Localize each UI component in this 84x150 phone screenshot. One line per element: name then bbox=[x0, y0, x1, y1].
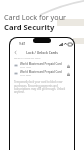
button[interactable]: Lock card bbox=[66, 72, 70, 76]
button[interactable]: Lock card bbox=[66, 64, 70, 68]
button[interactable]: Back bbox=[13, 50, 18, 55]
staticText: SELECT A CARD TO LOCK bbox=[14, 57, 41, 60]
button[interactable]: World Mastercard Prepaid Card bbox=[10, 61, 74, 70]
staticText: **** 1234 bbox=[20, 66, 31, 69]
staticText: Lock / Unlock Cards bbox=[10, 50, 74, 54]
staticText: **** 5678 bbox=[20, 74, 31, 77]
staticText: Card Lock for your bbox=[4, 12, 67, 22]
staticText: Card Security bbox=[4, 22, 55, 32]
staticText: World Mastercard Prepaid Card bbox=[20, 62, 62, 66]
staticText: 9:41 bbox=[19, 42, 26, 46]
staticText: Temporarily lock your card to block new … bbox=[14, 80, 73, 94]
staticText: World Mastercard Prepaid Card bbox=[20, 70, 62, 74]
button[interactable]: World Mastercard Prepaid Card bbox=[10, 69, 74, 78]
